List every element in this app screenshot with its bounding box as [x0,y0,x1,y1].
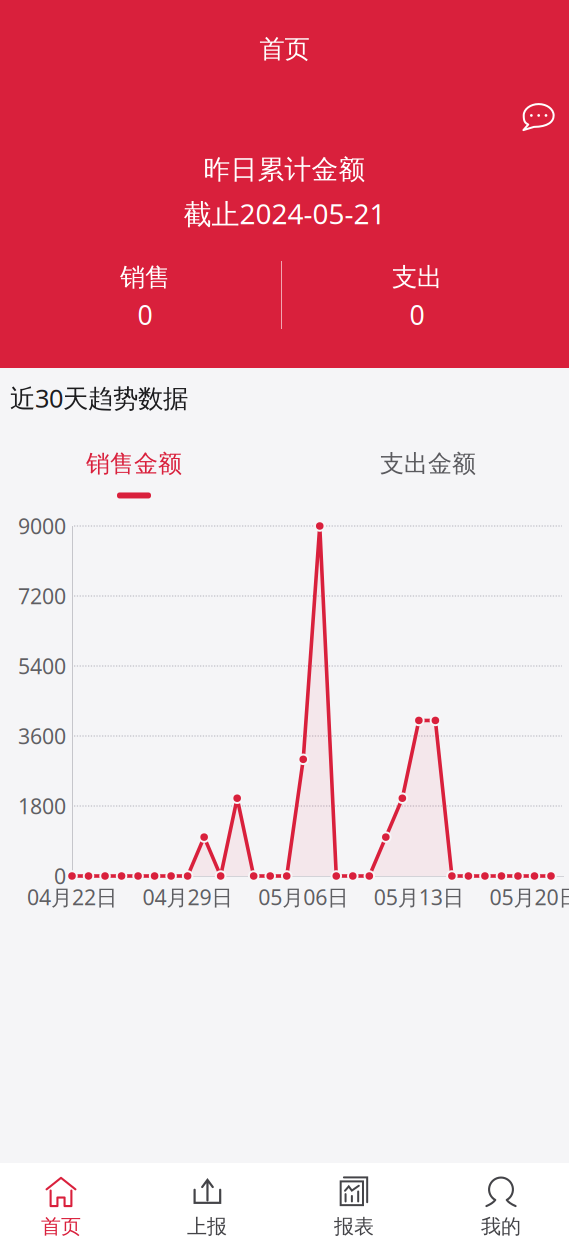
staticText: 1800 [18,792,66,820]
staticText: 04月22日 [27,883,117,911]
staticText: 报表 [334,1214,374,1239]
staticText: 销售金额 [86,449,182,478]
button[interactable]: 上报 [147,1176,267,1244]
staticText: 我的 [481,1214,521,1239]
staticText: 05月06日 [258,883,348,911]
staticText: 上报 [187,1214,227,1239]
staticText: 0 [409,297,424,332]
staticText: 截止2024-05-21 [183,195,385,232]
staticText: 0 [137,297,152,332]
staticText: 支出金额 [380,449,476,478]
staticText: 昨日累计金额 [203,153,365,186]
staticText: 04月29日 [143,883,233,911]
button[interactable]: 我的 [441,1176,561,1244]
staticText: 销售 [120,262,170,293]
staticText: 0 [54,862,66,890]
button[interactable]: 销售金额 [59,449,209,509]
staticText: 05月20日 [489,883,569,911]
button[interactable]: 首页 [1,1176,121,1244]
button[interactable]: 报表 [294,1176,414,1244]
staticText: 3600 [18,722,66,750]
staticText: 首页 [41,1214,81,1239]
button[interactable]: 支出金额 [353,449,503,509]
staticText: 05月13日 [374,883,464,911]
button[interactable]: 消息 [521,102,555,134]
staticText: 近30天趋势数据 [10,381,188,415]
staticText: 5400 [18,652,66,680]
staticText: 9000 [18,512,66,540]
staticText: 首页 [259,33,309,64]
staticText: 7200 [18,582,66,610]
staticText: 支出 [392,262,442,293]
